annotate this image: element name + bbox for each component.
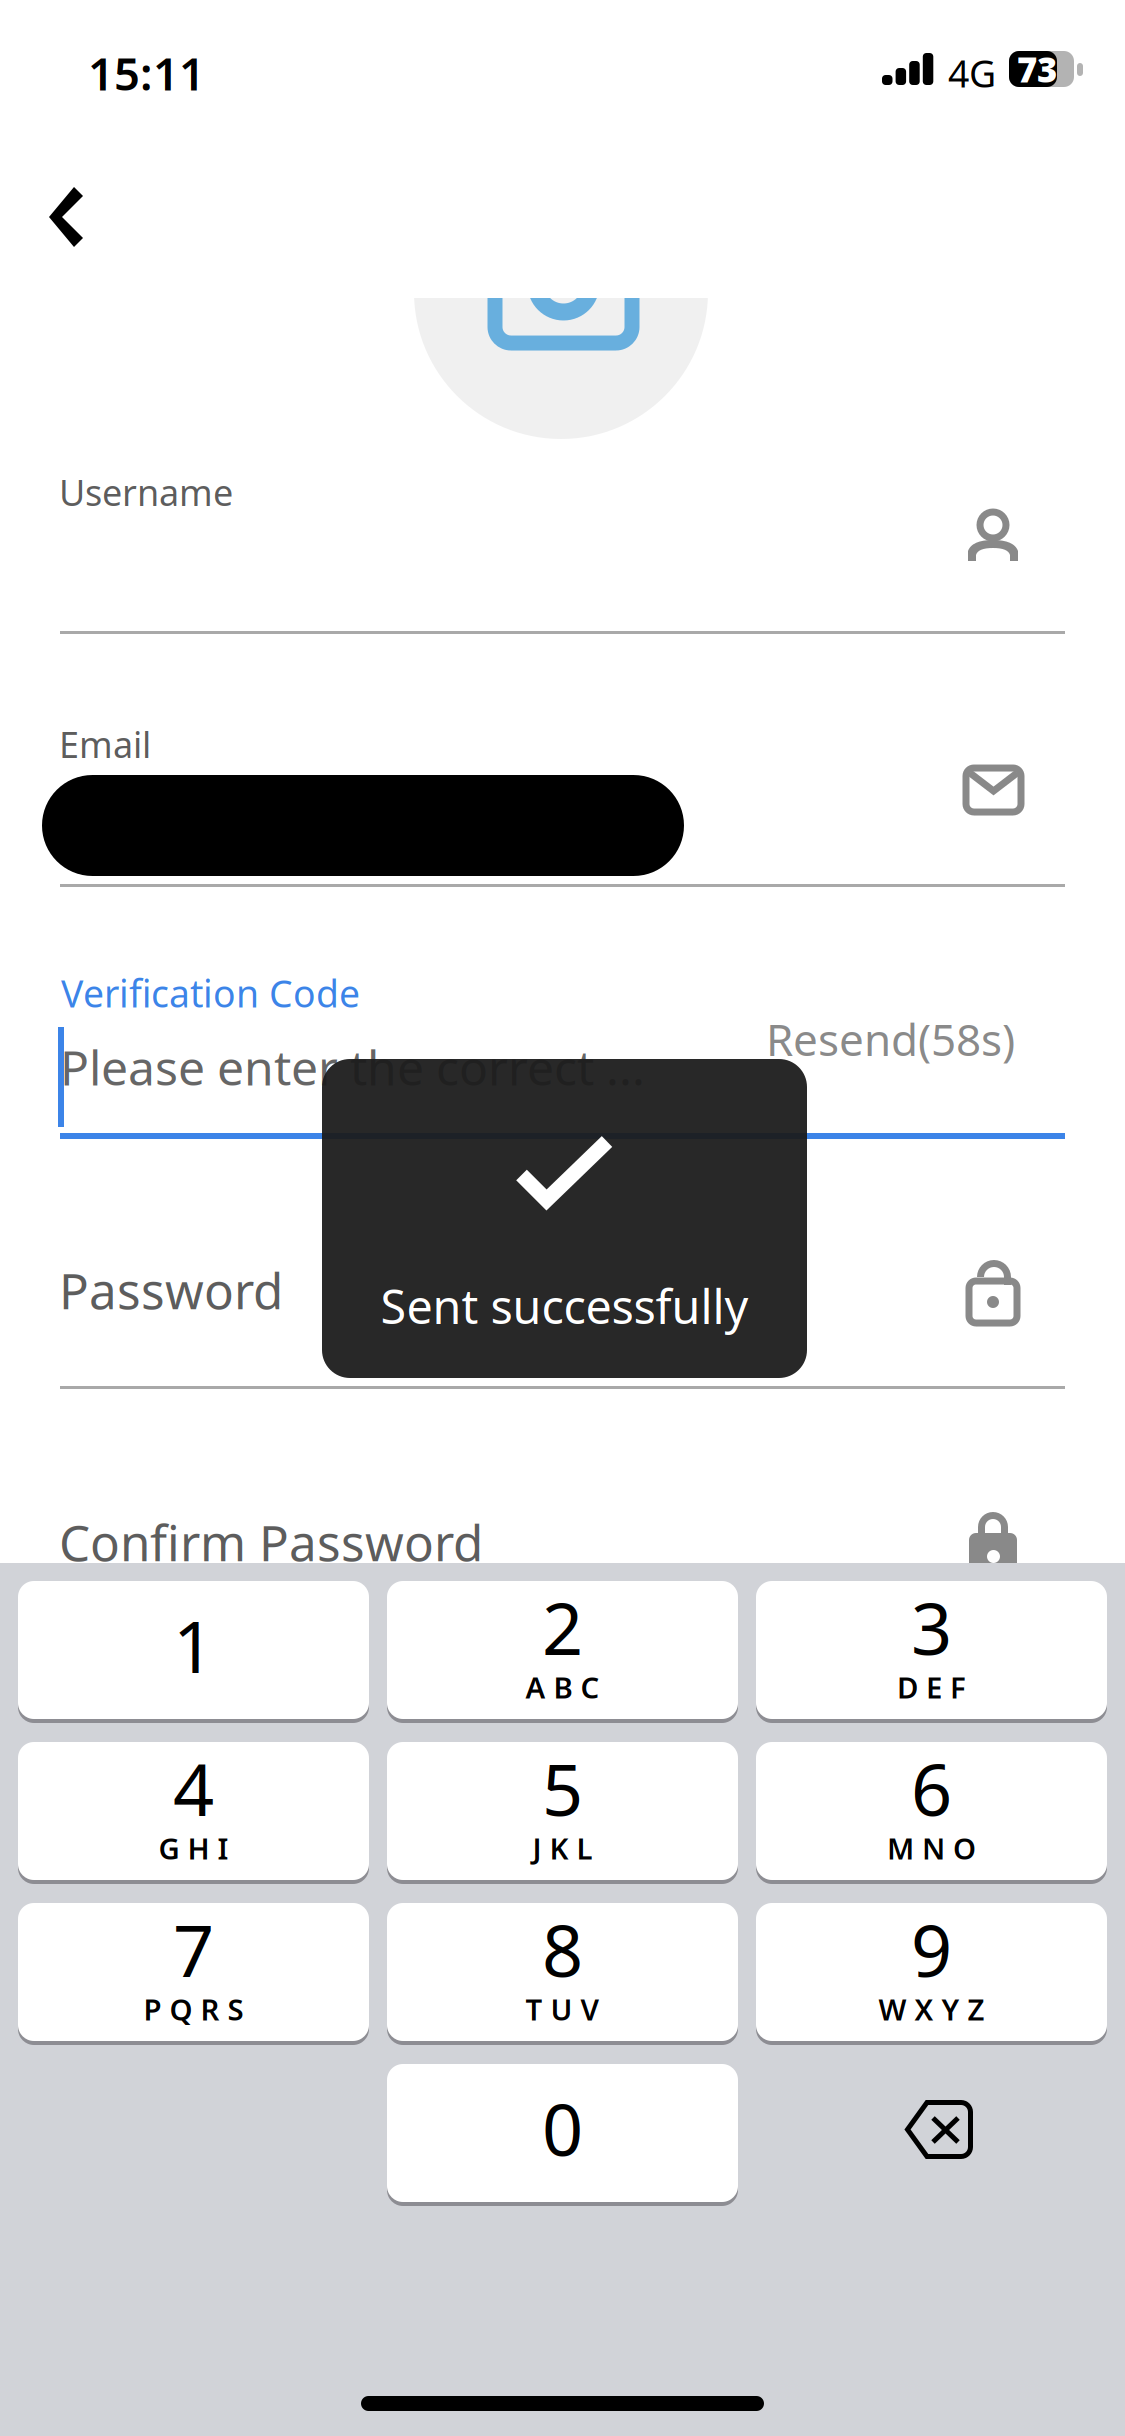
button[interactable]: 7	[18, 1903, 369, 2045]
staticText: TUV	[525, 1989, 599, 2028]
staticText: 4G	[948, 48, 996, 98]
staticText: 6	[911, 1740, 952, 1836]
staticText: Verification Code	[61, 968, 360, 1018]
button[interactable]: 9	[756, 1903, 1107, 2045]
staticText: 9	[911, 1901, 952, 1997]
staticText: MNO	[887, 1828, 976, 1867]
staticText: Confirm Password	[59, 1509, 483, 1575]
staticText: Sent successfully	[380, 1275, 748, 1337]
button[interactable]: Back	[24, 176, 136, 258]
staticText: 73	[1017, 46, 1057, 92]
staticText: 2	[542, 1579, 583, 1675]
button[interactable]: Confirm Password	[60, 1492, 1065, 1582]
staticText: 0	[542, 2080, 583, 2176]
staticText: 8	[542, 1901, 583, 1997]
button[interactable]: 1	[18, 1581, 369, 1723]
button[interactable]: 8	[387, 1903, 738, 2045]
staticText: 15:11	[88, 43, 205, 103]
staticText: Resend(58s)	[766, 1010, 1015, 1068]
staticText: 3	[911, 1579, 952, 1675]
staticText: Username	[59, 468, 233, 516]
button[interactable]: Resend(58s)	[515, 1015, 1015, 1063]
button[interactable]: Username	[60, 458, 1065, 634]
button[interactable]: 0	[387, 2064, 738, 2206]
staticText: 1	[173, 1597, 214, 1693]
staticText: Email	[59, 720, 151, 768]
staticText: GHI	[158, 1828, 228, 1867]
staticText: ABC	[525, 1667, 599, 1706]
staticText: WXYZ	[878, 1989, 984, 2028]
button[interactable]: 2	[387, 1581, 738, 1723]
button[interactable]: 3	[756, 1581, 1107, 1723]
button[interactable]: Password	[60, 1240, 1065, 1389]
staticText: 5	[542, 1740, 583, 1836]
button[interactable]: 5	[387, 1742, 738, 1884]
staticText: 7	[173, 1901, 214, 1997]
staticText: JKL	[532, 1828, 592, 1867]
button[interactable]: 6	[756, 1742, 1107, 1884]
staticText: 4	[173, 1740, 214, 1836]
staticText: Password	[59, 1257, 283, 1323]
staticText: Please enter the correct ...	[60, 1035, 645, 1099]
button[interactable]: 4	[18, 1742, 369, 1884]
button[interactable]: Email	[60, 710, 1065, 887]
button[interactable]: Delete	[756, 2064, 1107, 2206]
staticText: PQRS	[143, 1989, 243, 2028]
staticText: DEF	[897, 1667, 966, 1706]
